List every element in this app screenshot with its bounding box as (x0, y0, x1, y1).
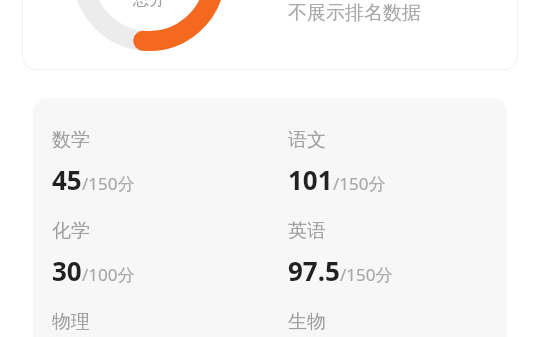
button[interactable]: 化学 (52, 219, 269, 288)
staticText: 101 (288, 162, 333, 197)
staticText: /150分 (333, 172, 386, 195)
button[interactable]: 语文 (288, 128, 505, 197)
staticText: 英语 (288, 219, 326, 243)
staticText: 45 (52, 162, 82, 197)
button[interactable]: 物理 (52, 310, 269, 337)
staticText: /100分 (82, 263, 135, 286)
staticText: 不展示排名数据 (288, 1, 421, 25)
staticText: 物理 (52, 310, 90, 334)
staticText: 语文 (288, 128, 326, 152)
staticText: 生物 (288, 310, 326, 334)
staticText: /150分 (82, 172, 135, 195)
staticText: 总分 (133, 0, 165, 10)
button[interactable]: 数学 (52, 128, 269, 197)
staticText: 30 (52, 253, 82, 288)
staticText: /150分 (340, 263, 393, 286)
button[interactable]: 英语 (288, 219, 505, 288)
other: Total score ring chart (73, 0, 225, 51)
staticText: 数学 (52, 128, 90, 152)
button[interactable]: Total score ring chart (23, 0, 517, 69)
button[interactable]: 生物 (288, 310, 505, 337)
staticText: 97.5 (288, 253, 340, 288)
staticText: 化学 (52, 219, 90, 243)
